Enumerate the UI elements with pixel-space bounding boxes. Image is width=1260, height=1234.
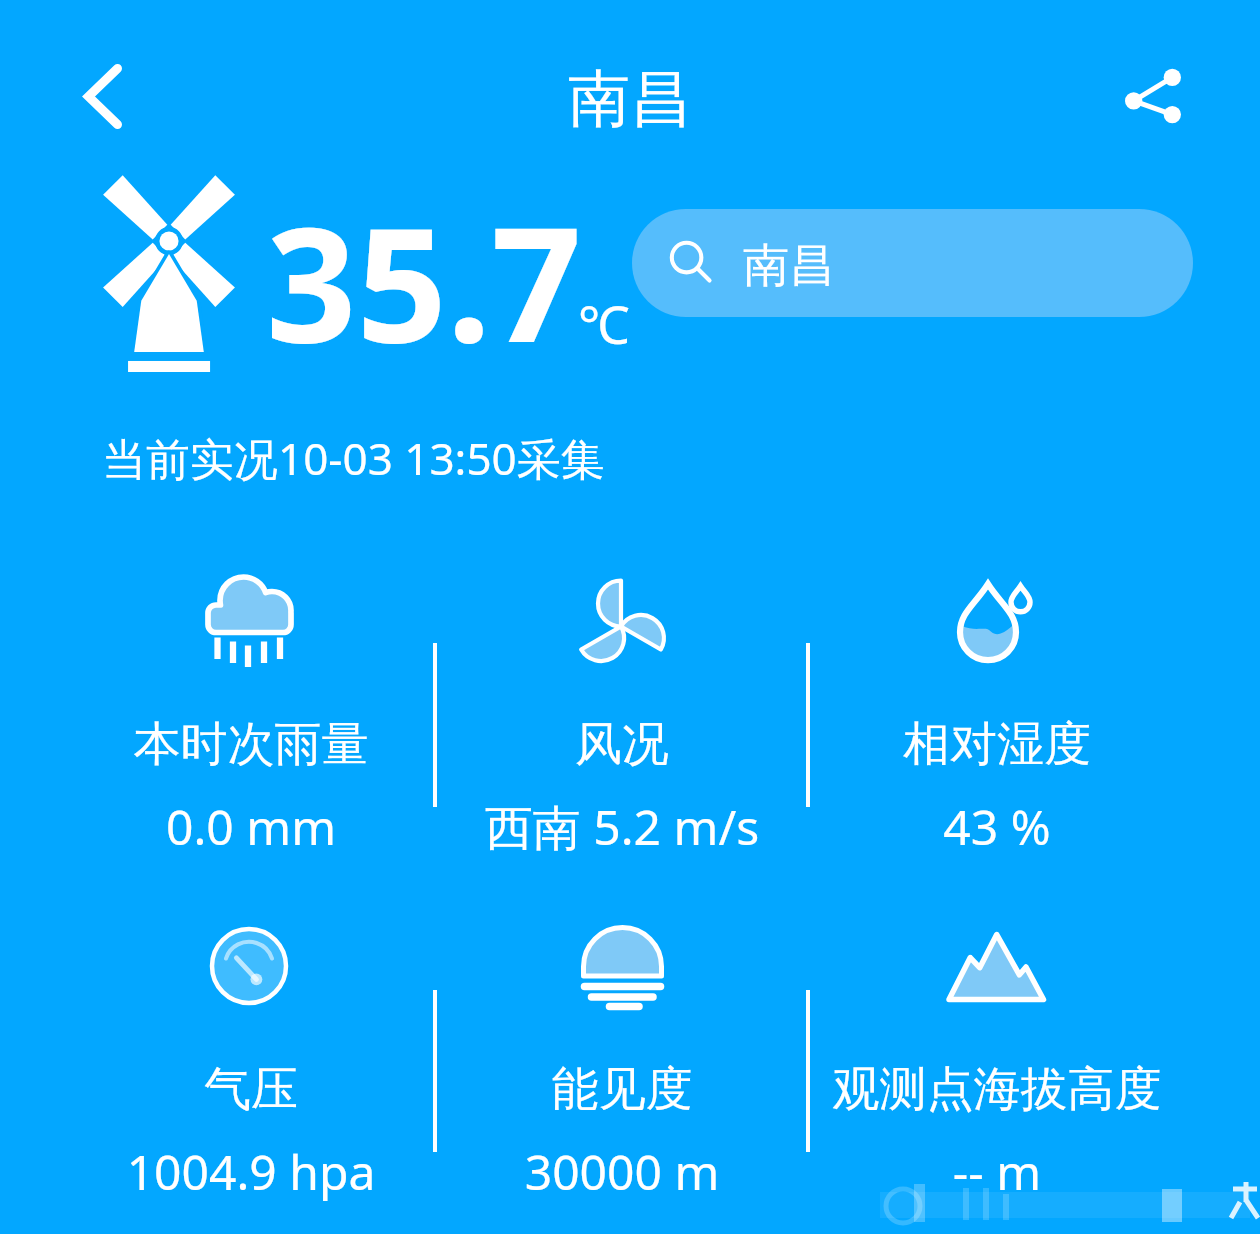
staticText: ℃	[578, 288, 630, 359]
button[interactable]: 气压	[65, 917, 437, 1213]
staticText: 当前实况10-03 13:50采集	[102, 428, 605, 488]
button[interactable]: Share	[1125, 67, 1181, 125]
staticText: 南昌	[568, 60, 692, 138]
staticText: 相对湿度	[811, 715, 1183, 774]
button[interactable]: 本时次雨量	[65, 572, 437, 868]
staticText: 35.7	[266, 173, 582, 388]
button[interactable]: Back	[84, 64, 122, 129]
staticText: -- m	[811, 1139, 1183, 1204]
staticText: 南昌	[743, 237, 835, 295]
button[interactable]: 能见度	[436, 917, 808, 1213]
button[interactable]: 相对湿度	[811, 572, 1183, 868]
button[interactable]: 风况	[436, 572, 808, 868]
staticText: 观测点海拔高度	[811, 1060, 1183, 1119]
button[interactable]: 观测点海拔高度	[811, 917, 1183, 1213]
staticText: 能见度	[436, 1060, 808, 1119]
staticText: 西南 5.2 m/s	[436, 794, 808, 860]
staticText: 本时次雨量	[65, 715, 437, 774]
staticText: 43 %	[811, 794, 1183, 859]
staticText: 气压	[65, 1060, 437, 1119]
staticText: 0.0 mm	[65, 794, 437, 859]
staticText: 30000 m	[436, 1139, 808, 1204]
staticText: 1004.9 hpa	[65, 1139, 437, 1204]
button[interactable]: 南昌	[632, 209, 1193, 317]
staticText: 风况	[436, 715, 808, 774]
